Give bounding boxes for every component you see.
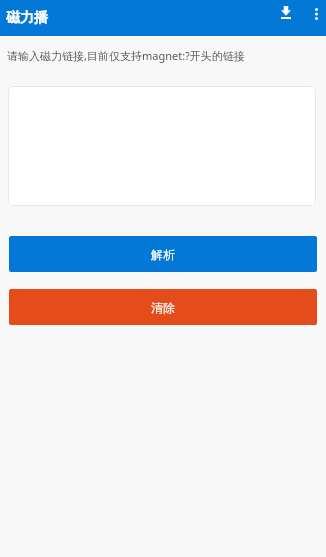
staticText: 解析: [151, 247, 175, 262]
button[interactable]: Downloads: [268, 0, 304, 25]
button[interactable]: More options: [304, 0, 326, 27]
button[interactable]: 清除: [9, 289, 317, 325]
staticText: 磁力播: [6, 9, 48, 27]
button[interactable]: Magnet link input: [8, 86, 316, 206]
staticText: 请输入磁力链接,目前仅支持magnet:?开头的链接: [7, 48, 245, 63]
staticText: 清除: [151, 300, 175, 315]
button[interactable]: 解析: [9, 236, 317, 272]
